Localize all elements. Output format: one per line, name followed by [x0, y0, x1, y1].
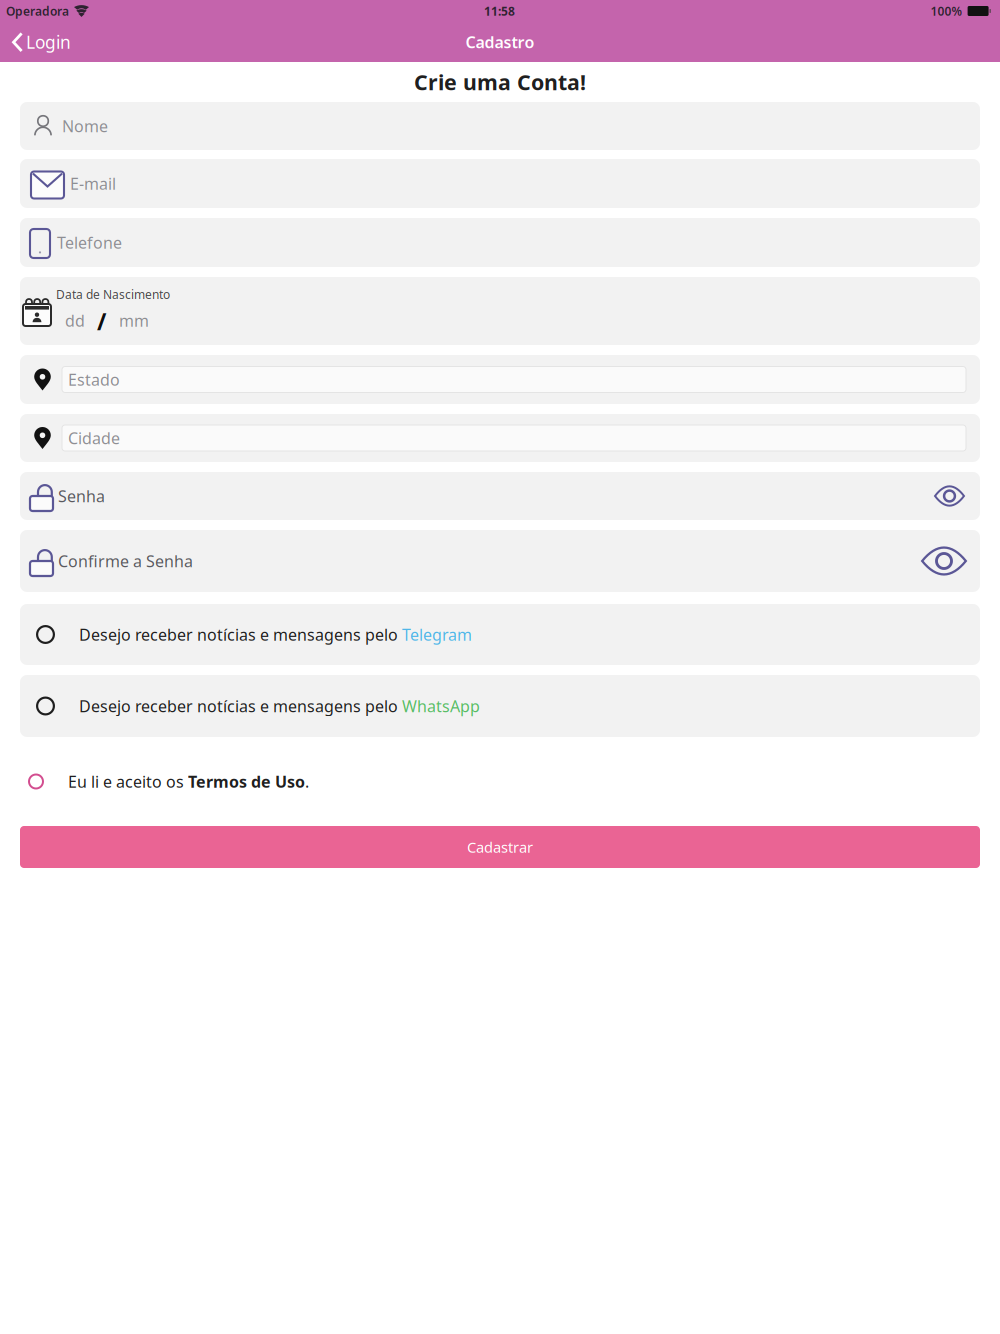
button[interactable]: Cadastrar [20, 826, 980, 868]
button[interactable]: Nome [20, 102, 980, 150]
staticText: Cidade [68, 427, 120, 449]
button[interactable]: Mostrar confirmação de senha [915, 539, 973, 583]
staticText: Desejo receber notícias e mensagens pelo [79, 624, 402, 645]
staticText: Termos de Uso [188, 771, 305, 792]
staticText: WhatsApp [402, 695, 480, 717]
button[interactable]: Desejo receber notícias e mensagens pelo [20, 604, 980, 665]
staticText: / [97, 306, 106, 336]
staticText: 100% [931, 3, 963, 19]
staticText: Telegram [402, 624, 472, 645]
staticText: Cadastro [465, 31, 534, 53]
staticText: Cadastrar [467, 837, 533, 857]
staticText: Confirme a Senha [58, 550, 193, 572]
staticText: Crie uma Conta! [414, 68, 586, 96]
button[interactable]: Mostrar senha [928, 478, 971, 513]
staticText: Nome [62, 115, 108, 137]
staticText: Operadora [6, 3, 69, 19]
staticText: E-mail [70, 173, 116, 194]
button[interactable]: Estado [20, 355, 980, 404]
staticText: 11:58 [484, 3, 515, 19]
staticText: . [305, 771, 309, 792]
button[interactable]: Telefone [20, 218, 980, 267]
button[interactable]: Cidade [20, 414, 980, 462]
staticText: Estado [68, 369, 120, 390]
staticText: dd [65, 310, 85, 331]
button[interactable]: Desejo receber notícias e mensagens pelo [20, 675, 980, 737]
staticText: Login [26, 30, 71, 53]
button[interactable]: Data de Nascimento [20, 277, 980, 345]
button[interactable]: Eu li e aceito os [20, 737, 980, 826]
staticText: Data de Nascimento [56, 286, 170, 302]
staticText: Telefone [57, 232, 122, 253]
staticText: Senha [58, 485, 105, 507]
staticText: Eu li e aceito os [68, 771, 188, 792]
staticText: mm [119, 310, 149, 331]
button[interactable]: E-mail [20, 159, 980, 208]
staticText: Desejo receber notícias e mensagens pelo [79, 695, 402, 717]
button[interactable]: Login [0, 22, 81, 62]
